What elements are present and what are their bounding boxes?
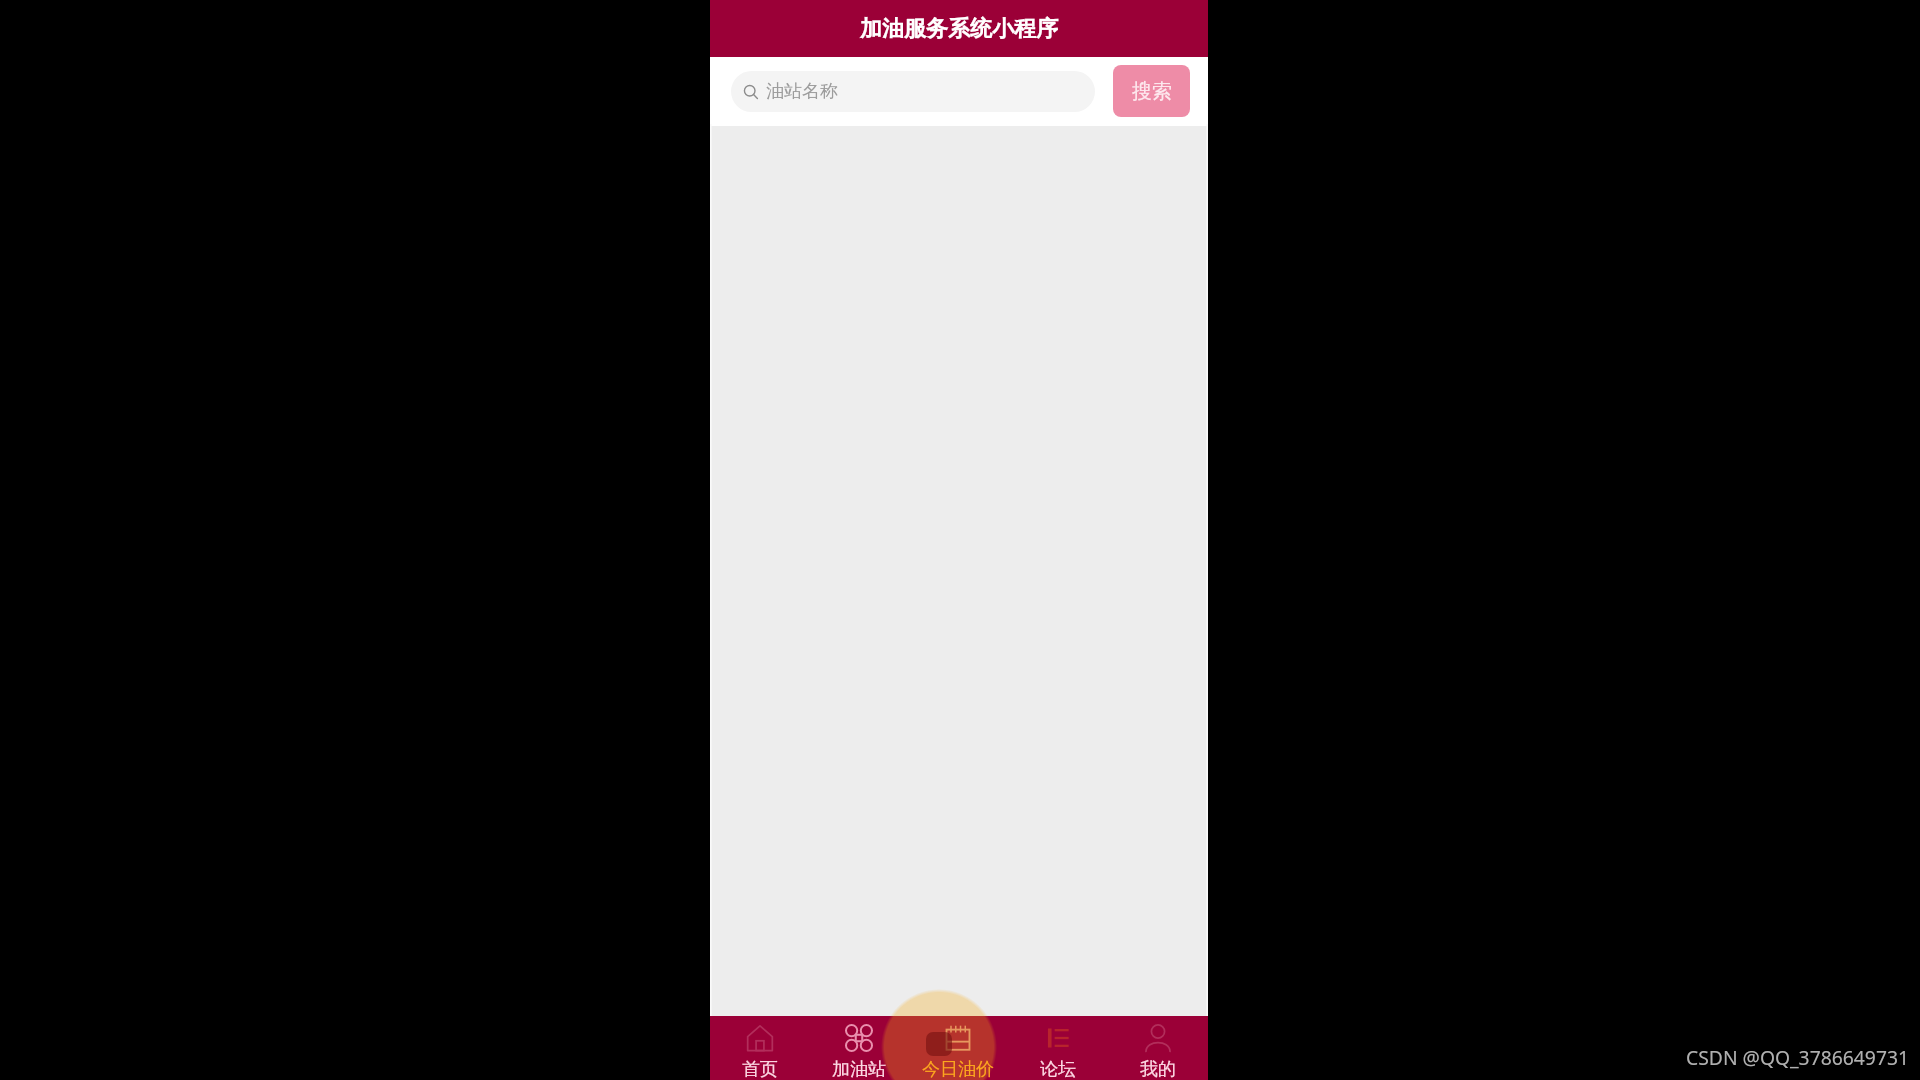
staticText: 油站名称 (766, 80, 838, 103)
staticText: 首页 (742, 1058, 778, 1080)
staticText: CSDN @QQ_3786649731 (1686, 1044, 1909, 1070)
staticText: 加油服务系统小程序 (860, 15, 1058, 43)
staticText: 我的 (1140, 1058, 1176, 1080)
button[interactable]: 搜索油站名称 (731, 71, 1095, 112)
button[interactable]: 首页 (710, 1016, 809, 1080)
button[interactable]: 搜索 (1113, 65, 1190, 117)
button[interactable]: 论坛 (1008, 1016, 1108, 1080)
button[interactable]: 加油站 (809, 1016, 908, 1080)
staticText: 今日油价 (922, 1058, 994, 1080)
button[interactable]: 今日油价 (908, 1016, 1008, 1080)
staticText: 加油站 (832, 1058, 886, 1080)
button[interactable]: 我的 (1108, 1016, 1208, 1080)
staticText: 论坛 (1040, 1058, 1076, 1080)
staticText: 搜索 (1132, 79, 1172, 104)
